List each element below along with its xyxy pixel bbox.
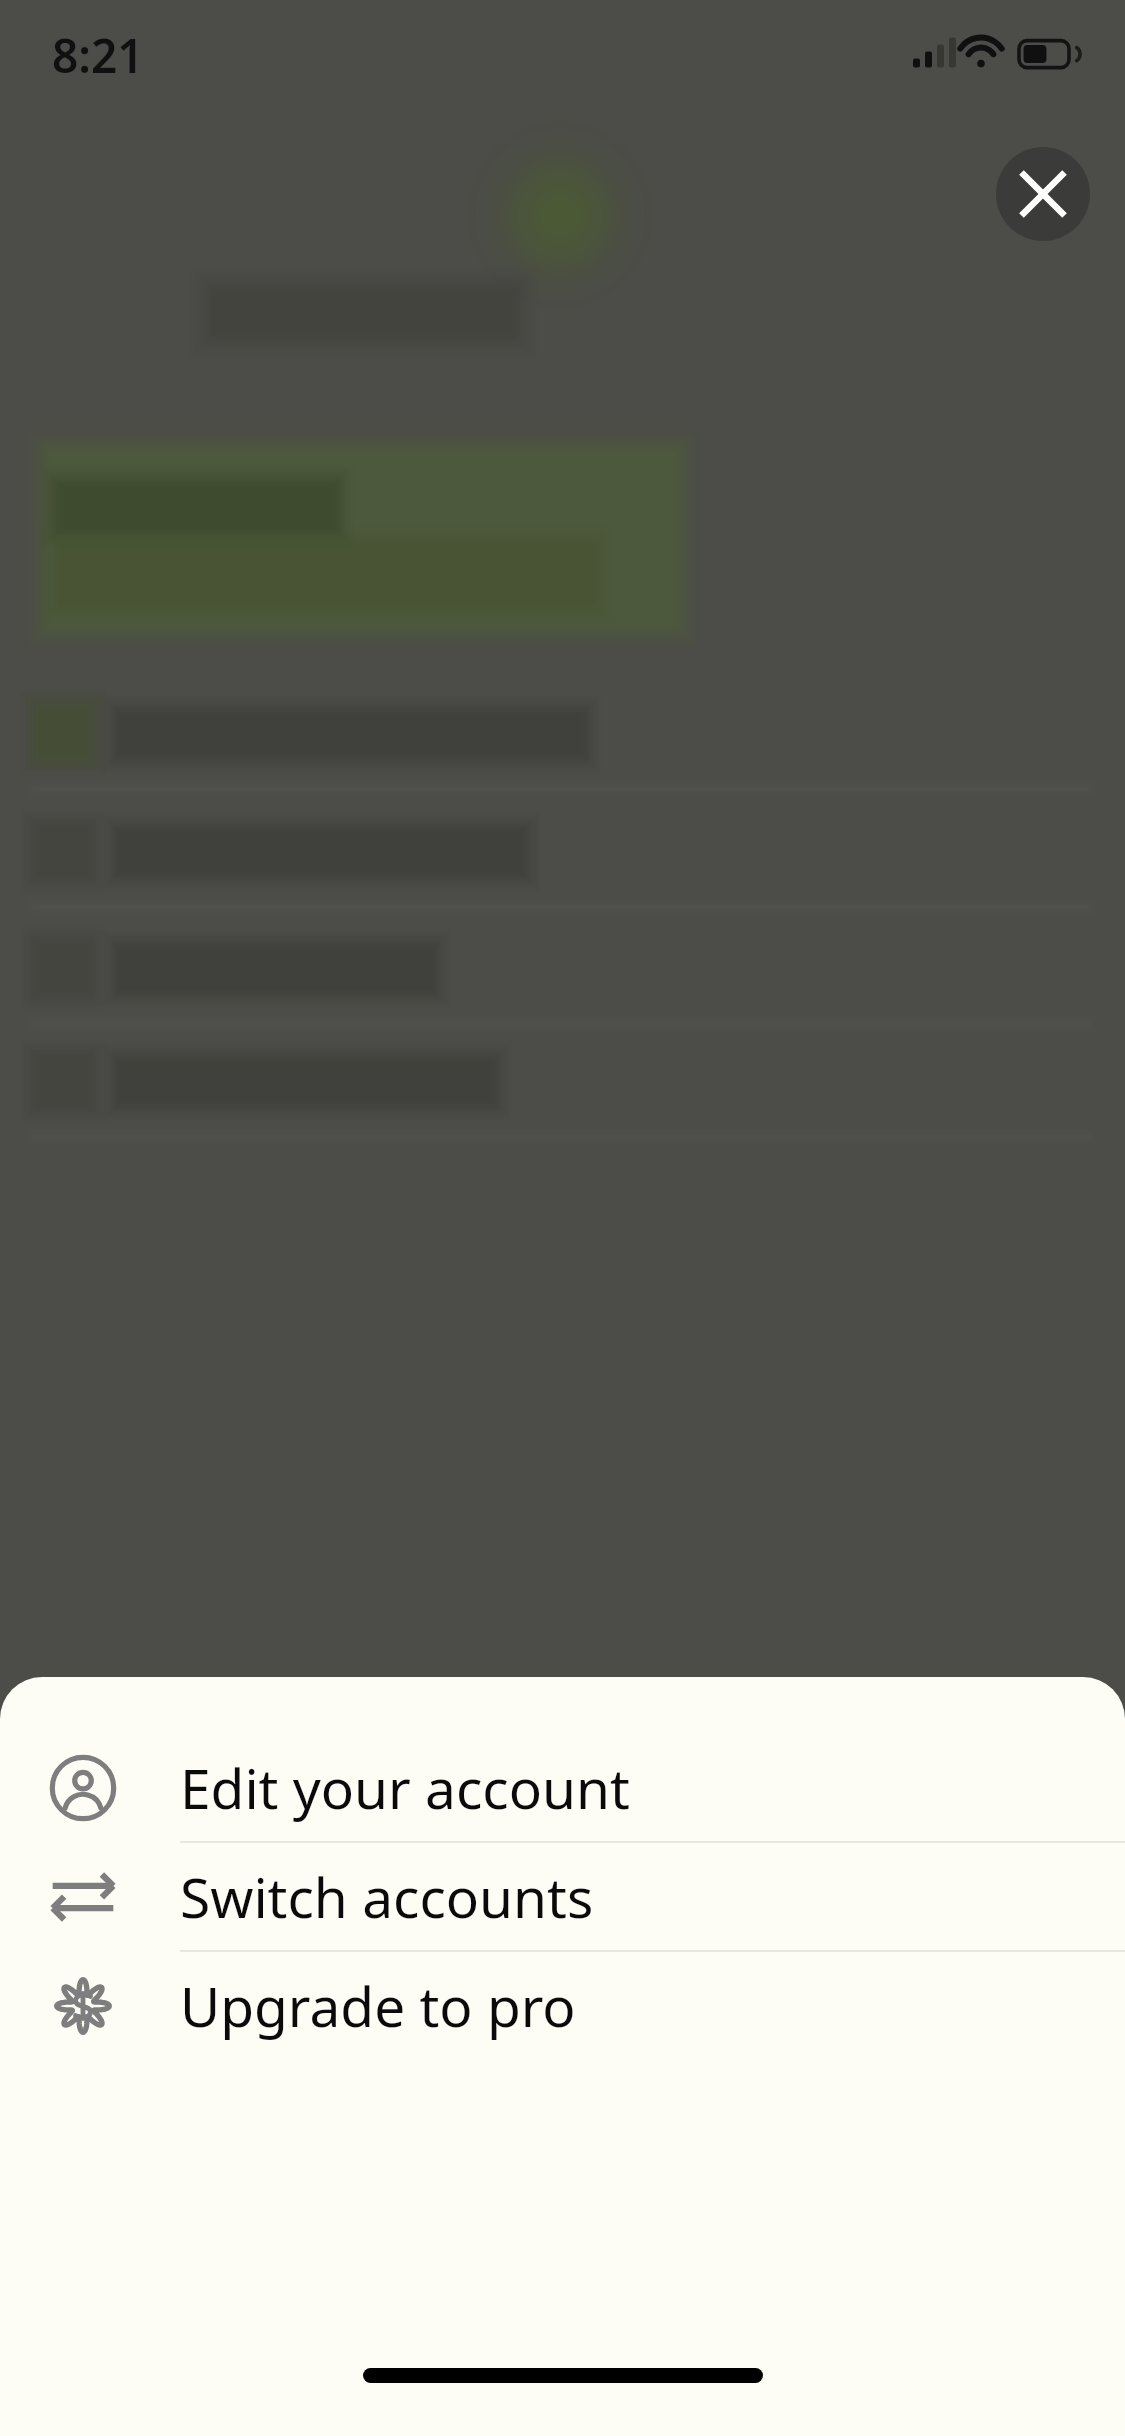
staticText: 8:21 — [52, 24, 144, 87]
button[interactable]: Switch accounts — [0, 1843, 1125, 1950]
button[interactable]: Upgrade to pro — [0, 1952, 1125, 2059]
staticText: Switch accounts — [180, 1859, 594, 1934]
staticText: Edit your account — [180, 1750, 630, 1825]
button[interactable]: Edit your account — [0, 1734, 1125, 1841]
staticText: Upgrade to pro — [180, 1968, 576, 2043]
button[interactable]: Close — [996, 147, 1090, 241]
